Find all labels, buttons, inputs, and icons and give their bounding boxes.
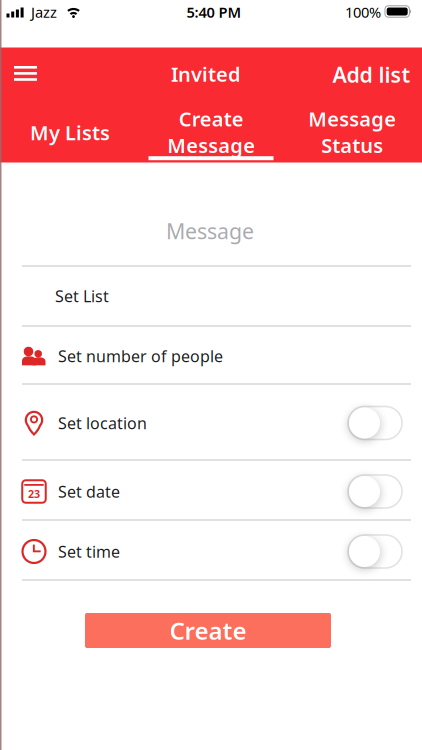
staticText: Set time (58, 541, 120, 562)
staticText: 5:40 PM (186, 2, 241, 22)
staticText: Set number of people (58, 345, 223, 367)
button[interactable]: Set location (348, 406, 402, 439)
staticText: Message Status (308, 105, 396, 158)
staticText: Create Message (167, 105, 255, 158)
staticText: Invited (171, 61, 241, 87)
staticText: 23 (28, 487, 40, 501)
button[interactable]: Add list (316, 53, 422, 95)
staticText: Message (166, 217, 254, 245)
staticText: Jazz (31, 2, 57, 22)
staticText: My Lists (30, 119, 110, 146)
staticText: Add list (332, 60, 410, 89)
button[interactable]: Message (20, 208, 400, 254)
button[interactable]: Create Message (140, 104, 281, 160)
button[interactable]: Message Status (282, 104, 422, 160)
staticText: Set location (58, 412, 147, 434)
button[interactable]: Set date (348, 475, 402, 508)
button[interactable]: Create (85, 613, 331, 648)
staticText: Set date (58, 481, 120, 502)
button[interactable]: Set time (348, 535, 402, 568)
staticText: Set List (55, 285, 109, 307)
staticText: Create (169, 615, 246, 646)
button[interactable]: Set List (0, 267, 422, 325)
staticText: 100% (345, 2, 381, 22)
button[interactable]: Menu (3, 54, 47, 92)
button[interactable]: Set number of people (0, 328, 422, 384)
button[interactable]: My Lists (0, 104, 140, 160)
